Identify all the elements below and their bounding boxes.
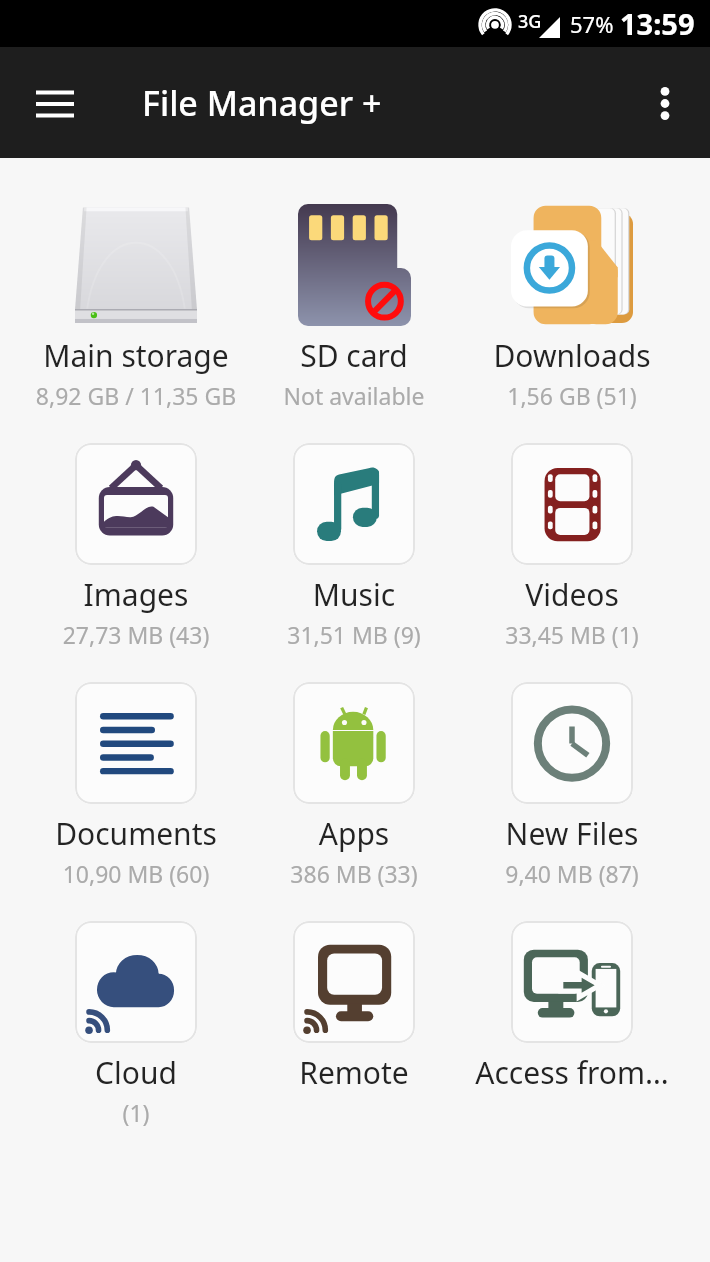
button[interactable]: Music: [245, 443, 463, 650]
button[interactable]: Cloud: [27, 921, 245, 1128]
button[interactable]: Documents: [27, 682, 245, 889]
staticText: 57%: [570, 9, 614, 39]
button[interactable]: Remote: [245, 921, 463, 1093]
staticText: 8,92 GB / 11,35 GB: [27, 380, 245, 411]
staticText: 27,73 MB (43): [27, 619, 245, 650]
staticText: Remote: [246, 1052, 462, 1093]
button[interactable]: Downloads: [463, 204, 681, 411]
staticText: 3G: [518, 9, 542, 34]
staticText: Main storage: [28, 335, 244, 376]
staticText: New Files: [464, 813, 680, 854]
staticText: Apps: [246, 813, 462, 854]
button[interactable]: New Files: [463, 682, 681, 889]
staticText: 386 MB (33): [245, 858, 463, 889]
button[interactable]: Apps: [245, 682, 463, 889]
button[interactable]: More options: [625, 63, 705, 143]
staticText: 9,40 MB (87): [463, 858, 681, 889]
staticText: Not available: [245, 380, 463, 411]
button[interactable]: Videos: [463, 443, 681, 650]
staticText: Access from…: [464, 1052, 680, 1093]
staticText: SD card: [246, 335, 462, 376]
staticText: 10,90 MB (60): [27, 858, 245, 889]
staticText: Music: [246, 574, 462, 615]
button[interactable]: Open navigation menu: [9, 57, 101, 149]
button[interactable]: Main storage: [27, 204, 245, 411]
staticText: File Manager +: [142, 80, 382, 126]
staticText: 1,56 GB (51): [463, 380, 681, 411]
staticText: (1): [27, 1097, 245, 1128]
staticText: Downloads: [464, 335, 680, 376]
staticText: Cloud: [28, 1052, 244, 1093]
button[interactable]: SD card: [245, 204, 463, 411]
staticText: 31,51 MB (9): [245, 619, 463, 650]
button[interactable]: Images: [27, 443, 245, 650]
staticText: 33,45 MB (1): [463, 619, 681, 650]
button[interactable]: Access from…: [463, 921, 681, 1093]
staticText: 13:59: [620, 4, 695, 43]
staticText: Videos: [464, 574, 680, 615]
staticText: Images: [28, 574, 244, 615]
staticText: Documents: [28, 813, 244, 854]
